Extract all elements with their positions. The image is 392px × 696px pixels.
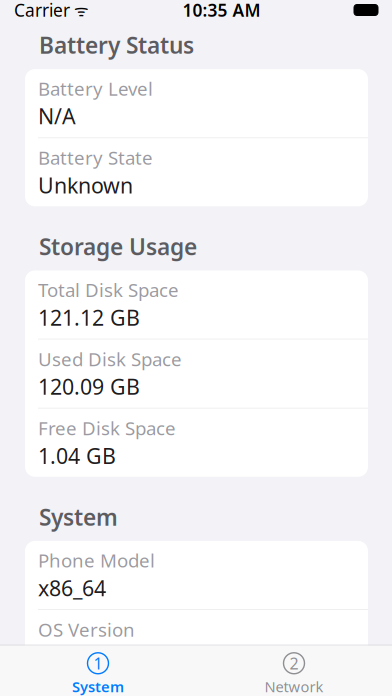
- staticText: 121.12 GB: [38, 303, 140, 331]
- staticText: Up Time (Hours): [38, 686, 182, 696]
- staticText: Phone Model: [38, 548, 155, 573]
- staticText: OS Version: [38, 617, 135, 642]
- staticText: System: [72, 677, 124, 696]
- staticText: 1.04 GB: [38, 441, 116, 470]
- staticText: 120.09 GB: [38, 372, 140, 401]
- staticText: Total Disk Space: [38, 277, 179, 302]
- staticText: Unknown: [38, 171, 133, 199]
- staticText: 2: [289, 653, 298, 674]
- staticText: System: [39, 502, 118, 532]
- staticText: x86_64: [38, 574, 106, 602]
- staticText: Battery Status: [39, 30, 194, 60]
- staticText: Carrier: [14, 0, 70, 21]
- staticText: Battery State: [38, 145, 153, 170]
- staticText: 1: [93, 653, 102, 674]
- staticText: Network: [264, 677, 323, 696]
- staticText: Used Disk Space: [38, 347, 182, 371]
- staticText: Storage Usage: [39, 231, 197, 261]
- button[interactable]: 1: [0, 646, 196, 696]
- button[interactable]: 2: [196, 646, 392, 696]
- staticText: N/A: [38, 102, 76, 130]
- staticText: ᯤ: [70, 0, 89, 21]
- staticText: 10:35 AM: [182, 0, 260, 21]
- staticText: Battery Level: [38, 76, 153, 101]
- staticText: Free Disk Space: [38, 416, 176, 440]
